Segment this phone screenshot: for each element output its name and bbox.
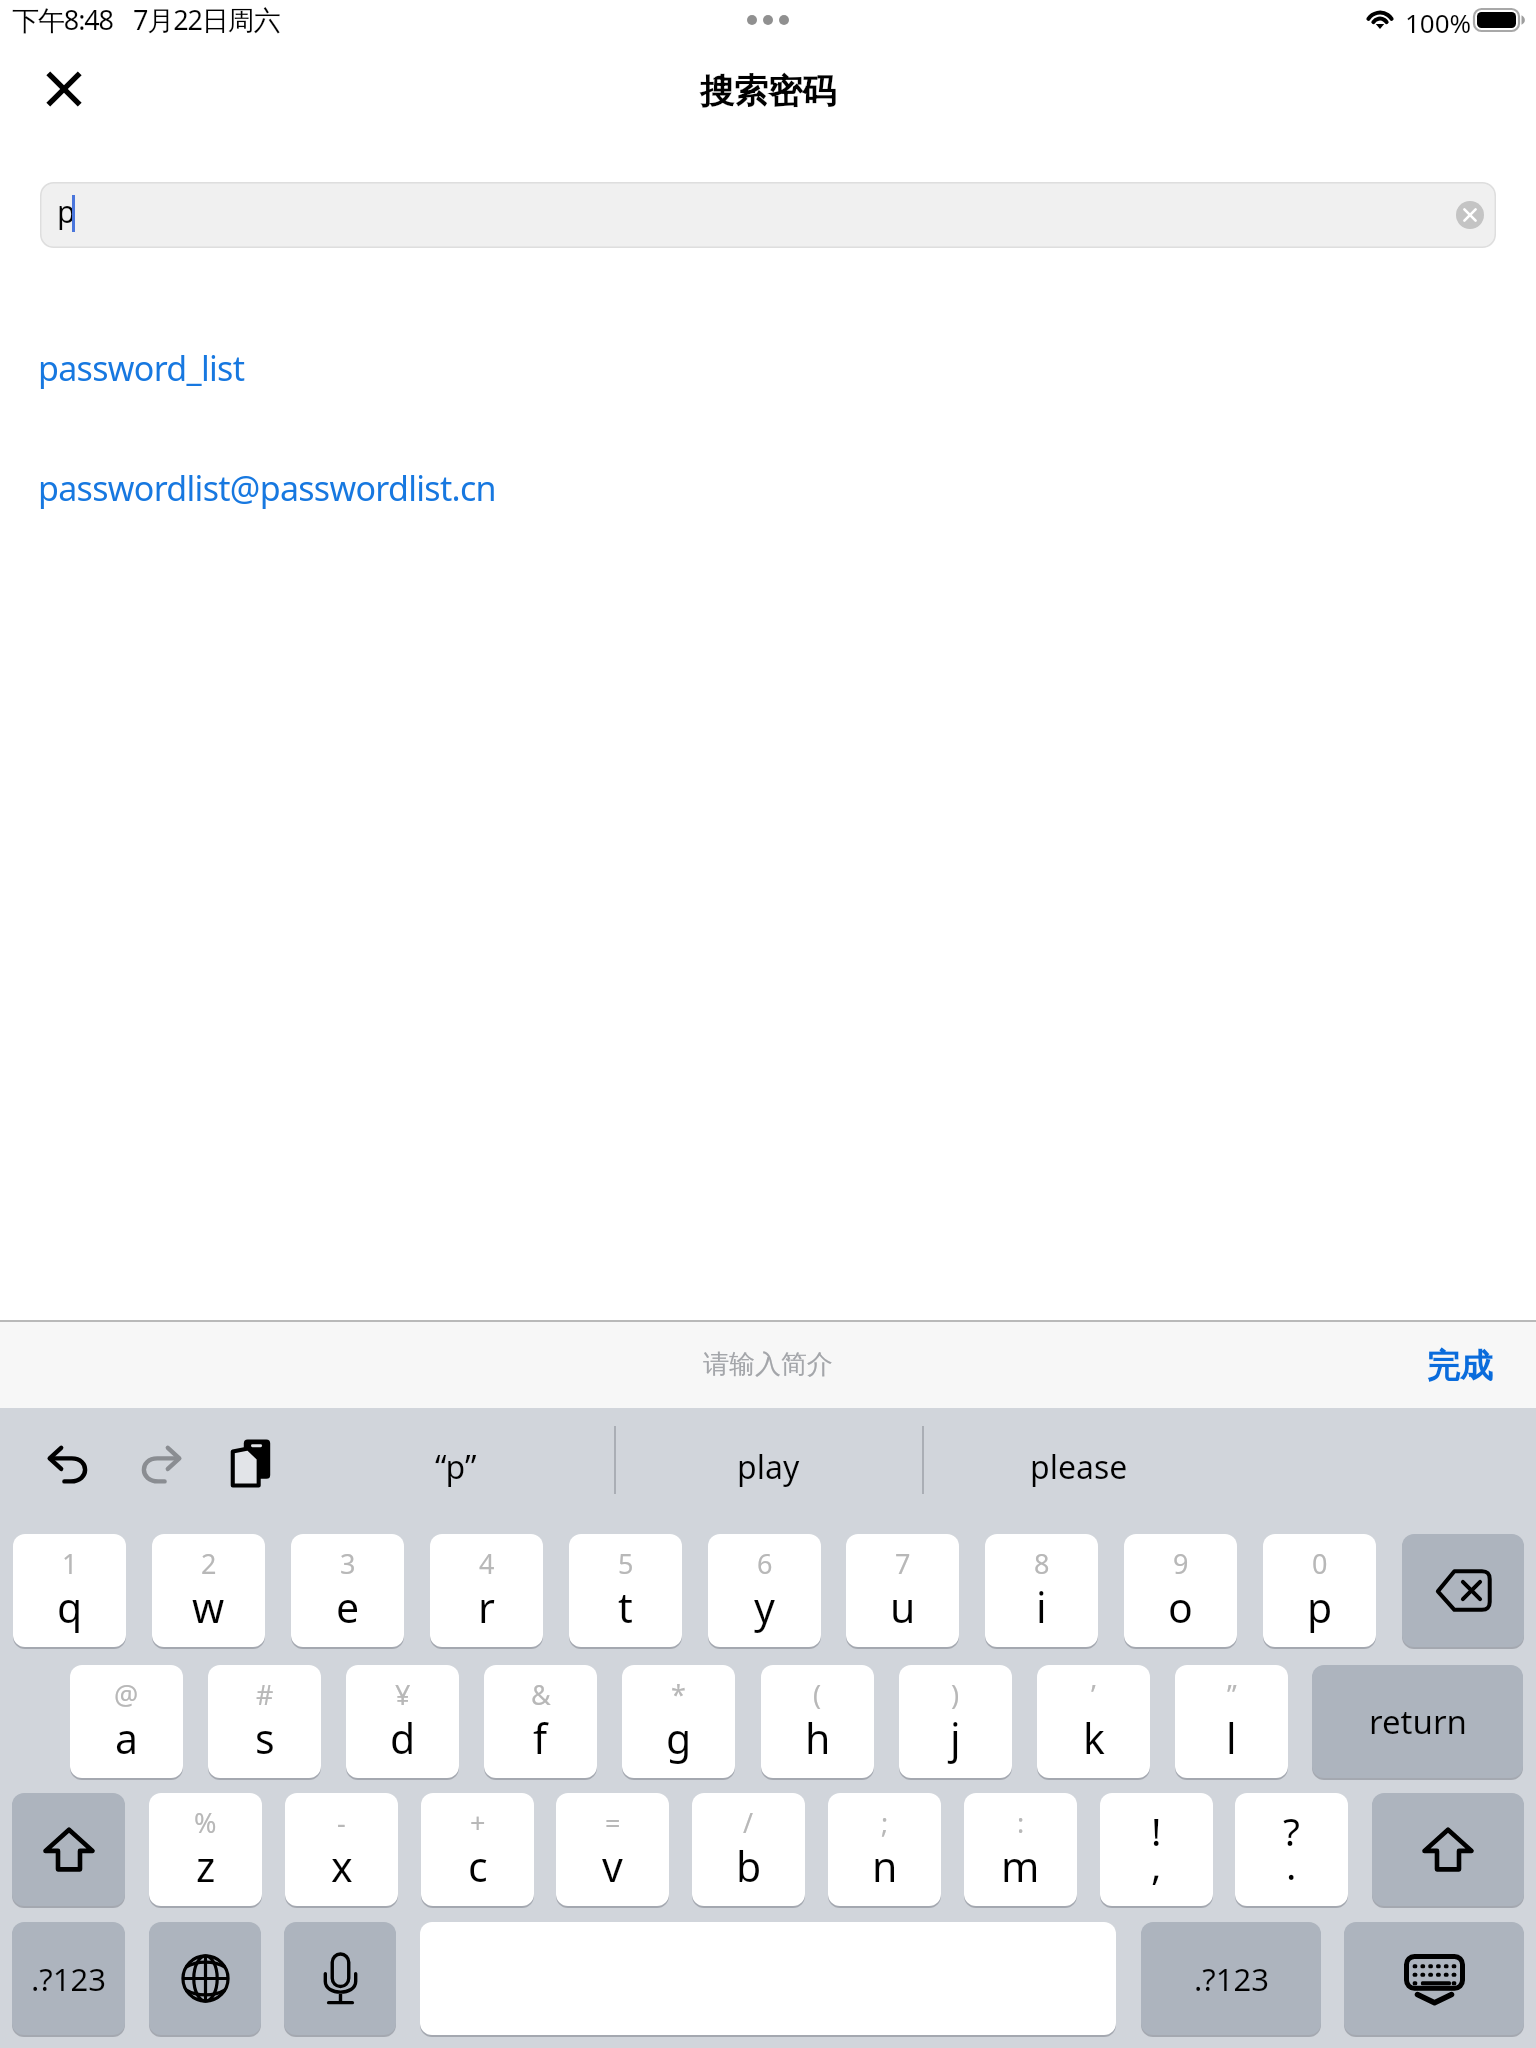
button[interactable]: password_list: [38, 345, 245, 391]
button[interactable]: Change keyboard language: [149, 1922, 261, 2035]
staticText: f: [533, 1710, 548, 1766]
button[interactable]: ¥: [346, 1665, 459, 1778]
staticText: :: [1017, 1804, 1025, 1841]
button[interactable]: 4: [430, 1534, 543, 1647]
staticText: -: [337, 1804, 346, 1841]
button[interactable]: ;: [828, 1793, 941, 1906]
button[interactable]: 0: [1263, 1534, 1376, 1647]
button[interactable]: .?123: [1141, 1922, 1321, 2035]
staticText: g: [666, 1710, 692, 1766]
staticText: q: [57, 1579, 83, 1635]
staticText: /: [743, 1804, 754, 1841]
button[interactable]: passwordlist@passwordlist.cn: [38, 465, 496, 511]
button[interactable]: !: [1100, 1793, 1213, 1906]
staticText: w: [192, 1579, 225, 1635]
staticText: .: [1286, 1838, 1297, 1891]
button[interactable]: =: [556, 1793, 669, 1906]
button[interactable]: 9: [1124, 1534, 1237, 1647]
button[interactable]: #: [208, 1665, 321, 1778]
staticText: p: [57, 191, 76, 232]
button[interactable]: ’: [1037, 1665, 1150, 1778]
staticText: v: [602, 1838, 623, 1894]
button[interactable]: return: [1312, 1665, 1523, 1778]
button[interactable]: 1: [13, 1534, 126, 1647]
button[interactable]: ”: [1175, 1665, 1288, 1778]
staticText: passwordlist@passwordlist.cn: [38, 465, 496, 511]
button[interactable]: Hide keyboard: [1344, 1922, 1524, 2035]
staticText: 8: [1034, 1545, 1050, 1582]
staticText: 1: [62, 1545, 78, 1582]
button[interactable]: :: [964, 1793, 1077, 1906]
button[interactable]: 7: [846, 1534, 959, 1647]
button[interactable]: /: [692, 1793, 805, 1906]
staticText: 0: [1312, 1545, 1328, 1582]
button[interactable]: please: [1003, 1408, 1155, 1526]
staticText: 请输入简介: [703, 1348, 833, 1381]
staticText: 100%: [1405, 5, 1472, 40]
button[interactable]: %: [149, 1793, 262, 1906]
button[interactable]: Redo: [137, 1440, 183, 1486]
button[interactable]: *: [622, 1665, 735, 1778]
button[interactable]: play: [692, 1408, 844, 1526]
staticText: %: [194, 1804, 217, 1841]
button[interactable]: &: [484, 1665, 597, 1778]
button[interactable]: Undo: [46, 1440, 92, 1486]
button[interactable]: 8: [985, 1534, 1098, 1647]
staticText: .?123: [1194, 1958, 1269, 2000]
button[interactable]: ?: [1235, 1793, 1348, 1906]
staticText: (: [813, 1676, 822, 1713]
button[interactable]: 5: [569, 1534, 682, 1647]
button[interactable]: 完成: [1427, 1345, 1493, 1387]
staticText: =: [605, 1804, 621, 1841]
staticText: password_list: [38, 345, 245, 391]
button[interactable]: Close: [38, 63, 90, 115]
staticText: ;: [881, 1804, 889, 1841]
staticText: j: [950, 1710, 961, 1766]
staticText: t: [618, 1579, 633, 1635]
staticText: a: [115, 1710, 139, 1766]
staticText: *: [671, 1676, 686, 1713]
staticText: 完成: [1427, 1345, 1493, 1387]
button[interactable]: Backspace: [1402, 1534, 1524, 1647]
button[interactable]: ): [899, 1665, 1012, 1778]
button[interactable]: -: [285, 1793, 398, 1906]
staticText: return: [1369, 1699, 1467, 1744]
button[interactable]: p: [40, 182, 1496, 248]
staticText: play: [737, 1445, 800, 1489]
button[interactable]: +: [421, 1793, 534, 1906]
button[interactable]: “p”: [380, 1408, 532, 1526]
button[interactable]: @: [70, 1665, 183, 1778]
staticText: 3: [340, 1545, 356, 1582]
button[interactable]: 3: [291, 1534, 404, 1647]
staticText: b: [736, 1838, 762, 1894]
staticText: ¥: [395, 1676, 411, 1713]
button[interactable]: Dictation: [284, 1922, 396, 2035]
staticText: 9: [1173, 1545, 1189, 1582]
staticText: “p”: [435, 1445, 477, 1489]
staticText: 6: [757, 1545, 773, 1582]
button[interactable]: 6: [708, 1534, 821, 1647]
staticText: #: [256, 1676, 274, 1713]
staticText: m: [1001, 1838, 1040, 1894]
button[interactable]: .?123: [12, 1922, 125, 2035]
staticText: 5: [618, 1545, 634, 1582]
staticText: y: [754, 1579, 775, 1635]
staticText: k: [1083, 1710, 1105, 1766]
button[interactable]: Clear text: [1456, 201, 1484, 229]
button[interactable]: (: [761, 1665, 874, 1778]
staticText: +: [470, 1804, 486, 1841]
staticText: ”: [1227, 1676, 1237, 1713]
staticText: 7月22日周六: [133, 1, 280, 38]
button[interactable]: Shift: [1372, 1793, 1524, 1906]
staticText: 2: [201, 1545, 217, 1582]
staticText: u: [890, 1579, 916, 1635]
staticText: r: [478, 1579, 495, 1635]
button[interactable]: Shift: [12, 1793, 125, 1906]
staticText: z: [196, 1838, 216, 1894]
button[interactable]: 2: [152, 1534, 265, 1647]
staticText: 搜索密码: [700, 70, 836, 113]
button[interactable]: Paste: [227, 1434, 275, 1490]
staticText: ?: [1283, 1804, 1300, 1857]
staticText: 4: [479, 1545, 495, 1582]
